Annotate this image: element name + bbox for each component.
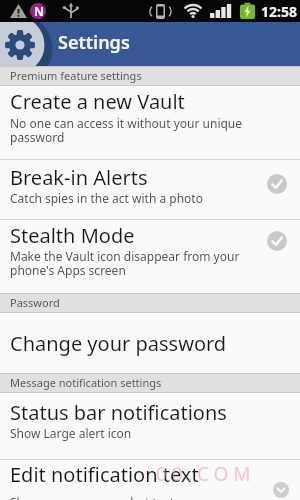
button[interactable]: Break-in Alerts bbox=[0, 160, 300, 220]
staticText: Create a new Vault bbox=[10, 88, 185, 115]
staticText: Password bbox=[10, 295, 60, 310]
staticText: 00.COM bbox=[156, 461, 256, 487]
staticText: Settings bbox=[58, 30, 130, 55]
button[interactable]: Stealth Mode bbox=[0, 220, 300, 293]
staticText: Catch spies in the act with a photo bbox=[10, 190, 203, 206]
staticText: Make the Vault icon disappear from your … bbox=[10, 248, 240, 279]
button[interactable]: Status bar notifications bbox=[0, 393, 300, 460]
staticText: N bbox=[34, 3, 44, 19]
staticText: No one can access it without your unique… bbox=[10, 115, 243, 146]
staticText: Stealth Mode bbox=[10, 222, 135, 249]
staticText: Change your password bbox=[10, 330, 227, 357]
staticText: Status bar notifications bbox=[10, 399, 227, 426]
staticText: 12:58 bbox=[261, 2, 297, 21]
staticText: Edit notification text bbox=[10, 461, 199, 488]
staticText: Premium feature settings bbox=[10, 68, 142, 83]
button[interactable]: Create a new Vault bbox=[0, 86, 300, 160]
button[interactable]: Change your password bbox=[0, 313, 300, 373]
staticText: Show new message alert text bbox=[10, 494, 175, 500]
staticText: Show Large alert icon bbox=[10, 425, 132, 441]
staticText: Message notification settings bbox=[10, 375, 162, 390]
staticText: Break-in Alerts bbox=[10, 164, 148, 191]
button[interactable]: Edit notification text bbox=[0, 460, 300, 500]
